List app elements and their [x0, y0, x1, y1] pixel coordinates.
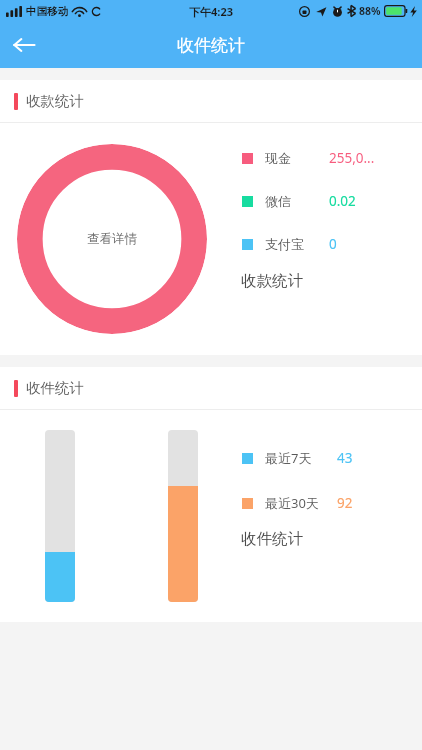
button[interactable]: 现金	[232, 149, 422, 167]
staticText: 收件统计	[26, 379, 84, 397]
button[interactable]	[168, 430, 198, 602]
staticText: 最近7天	[265, 449, 312, 467]
button[interactable]: 查看详情	[17, 144, 207, 334]
staticText: 收款统计	[26, 92, 84, 110]
staticText: 255,0...	[329, 149, 375, 167]
staticText: 43	[337, 449, 353, 467]
staticText: 支付宝	[265, 236, 304, 252]
staticText: 88%	[359, 4, 381, 18]
button[interactable]	[45, 430, 75, 602]
staticText: 92	[337, 494, 353, 512]
staticText: 收件统计	[241, 529, 303, 549]
button[interactable]: 支付宝	[232, 235, 422, 253]
staticText: 现金	[265, 150, 291, 166]
button[interactable]: 最近30天	[232, 494, 422, 512]
staticText: 0.02	[329, 192, 356, 210]
staticText: 0	[329, 235, 337, 253]
button[interactable]: Back	[0, 22, 48, 68]
staticText: 最近30天	[265, 494, 319, 512]
button[interactable]: 微信	[232, 192, 422, 210]
staticText: 下午4:23	[189, 4, 233, 19]
staticText: 查看详情	[87, 231, 137, 247]
staticText: 微信	[265, 193, 291, 209]
staticText: 中国移动	[26, 5, 68, 18]
button[interactable]: 最近7天	[232, 449, 422, 467]
staticText: 收款统计	[241, 271, 303, 291]
button[interactable]: 收款统计	[0, 80, 422, 122]
staticText: 收件统计	[177, 35, 245, 56]
button[interactable]: 收件统计	[0, 367, 422, 409]
